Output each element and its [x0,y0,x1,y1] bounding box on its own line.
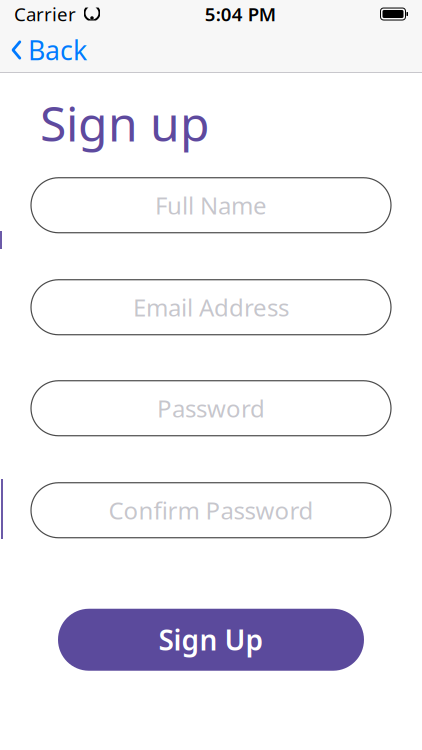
button[interactable]: Confirm Password [31,483,391,538]
button[interactable]: Email Address [31,280,391,335]
button[interactable]: Back [0,28,95,72]
staticText: Sign up [40,91,210,155]
staticText: Password [157,392,265,424]
staticText: Confirm Password [108,494,313,526]
button[interactable]: Sign Up [58,609,364,671]
staticText: Carrier [14,2,76,26]
staticText: Full Name [155,189,267,221]
staticText: 5:04 PM [205,2,276,26]
staticText: Email Address [133,291,289,323]
staticText: Back [28,32,87,68]
button[interactable]: Full Name [31,178,391,233]
button[interactable]: Password [31,381,391,436]
staticText: Sign Up [158,621,263,658]
